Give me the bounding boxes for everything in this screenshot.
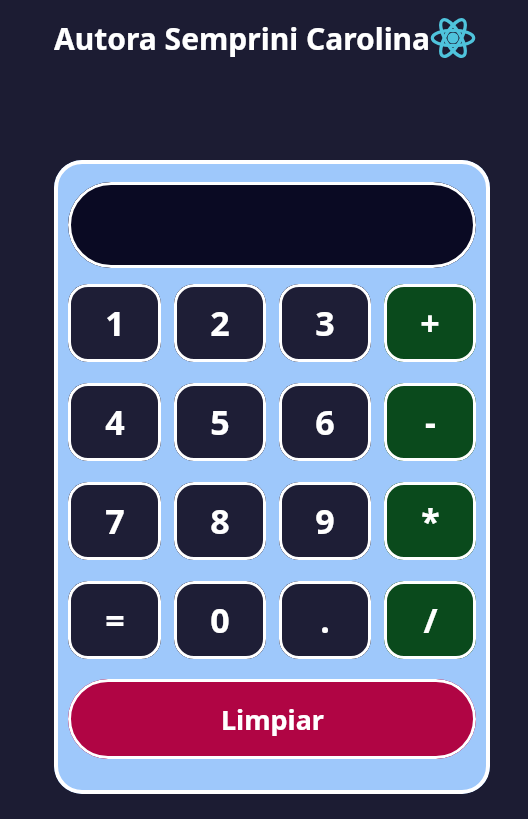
staticText: * bbox=[421, 498, 440, 544]
staticText: 9 bbox=[315, 498, 335, 544]
staticText: 4 bbox=[105, 399, 125, 445]
button[interactable]: 2 bbox=[174, 284, 266, 362]
staticText: = bbox=[105, 597, 125, 643]
staticText: 0 bbox=[210, 597, 230, 643]
staticText: 1 bbox=[105, 300, 125, 346]
button[interactable]: = bbox=[68, 581, 161, 659]
button[interactable]: / bbox=[384, 581, 476, 659]
button[interactable]: . bbox=[279, 581, 371, 659]
button[interactable]: Limpiar bbox=[68, 679, 476, 759]
staticText: Limpiar bbox=[221, 701, 324, 738]
button[interactable]: 6 bbox=[279, 383, 371, 461]
staticText: 8 bbox=[210, 498, 230, 544]
button[interactable]: Display bbox=[68, 182, 476, 268]
button[interactable]: + bbox=[384, 284, 476, 362]
other: React logo bbox=[431, 16, 475, 60]
button[interactable]: 0 bbox=[174, 581, 266, 659]
staticText: + bbox=[420, 300, 440, 346]
staticText: / bbox=[423, 597, 438, 643]
staticText: 5 bbox=[210, 399, 230, 445]
button[interactable]: 4 bbox=[68, 383, 161, 461]
button[interactable]: 3 bbox=[279, 284, 371, 362]
staticText: - bbox=[425, 399, 436, 445]
staticText: 6 bbox=[315, 399, 335, 445]
staticText: 2 bbox=[210, 300, 230, 346]
button[interactable]: 5 bbox=[174, 383, 266, 461]
staticText: Autora Semprini Carolina bbox=[54, 18, 431, 59]
button[interactable]: * bbox=[384, 482, 476, 560]
staticText: 7 bbox=[105, 498, 125, 544]
staticText: . bbox=[320, 597, 330, 643]
button[interactable]: 1 bbox=[68, 284, 161, 362]
button[interactable]: - bbox=[384, 383, 476, 461]
staticText: 3 bbox=[315, 300, 335, 346]
button[interactable]: 8 bbox=[174, 482, 266, 560]
button[interactable]: 9 bbox=[279, 482, 371, 560]
button[interactable]: 7 bbox=[68, 482, 161, 560]
